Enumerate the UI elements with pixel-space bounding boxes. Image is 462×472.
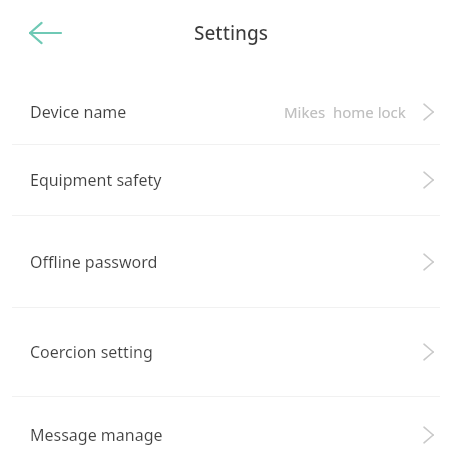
button[interactable]: Coercion setting [0,308,462,396]
button[interactable]: Offline password [0,216,462,307]
staticText: Device name [30,101,127,123]
staticText: Coercion setting [30,341,153,363]
staticText: Settings [194,20,268,46]
button[interactable]: Message manage [0,397,462,472]
button[interactable]: Equipment safety [0,145,462,215]
staticText: Message manage [30,424,163,446]
staticText: Equipment safety [30,169,162,191]
button[interactable]: Device name [0,80,462,144]
staticText: Offline password [30,251,158,273]
button[interactable]: Back [14,5,76,61]
staticText: Mikes home lock [284,102,406,122]
